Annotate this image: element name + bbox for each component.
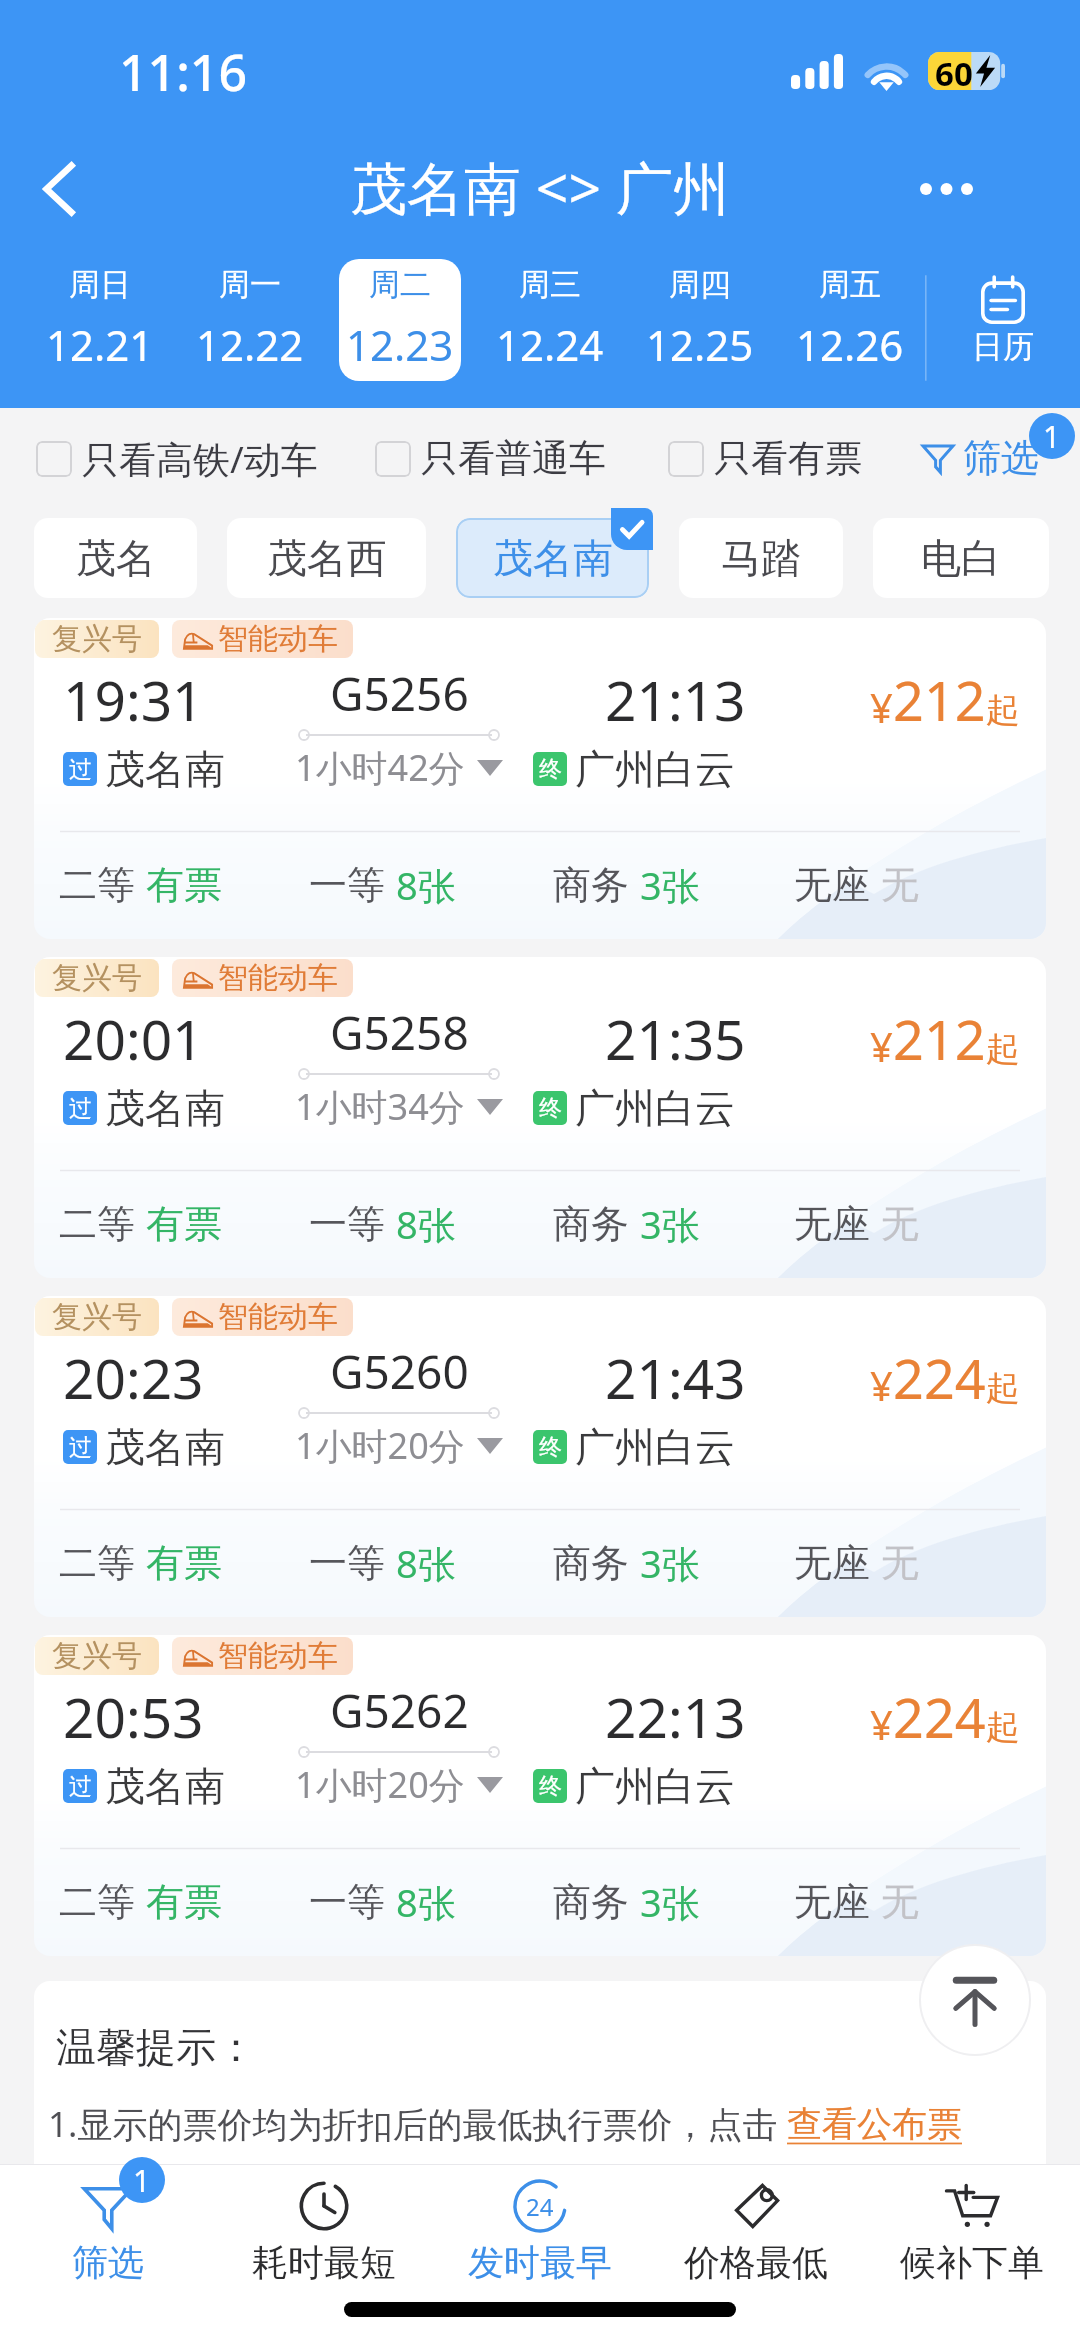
staticText: 茂名南 <> 广州 [350,148,730,226]
button[interactable]: 茂名南 [456,518,649,598]
button[interactable]: 周四 [639,259,761,381]
staticText: 二等 [59,1878,135,1926]
button[interactable]: 筛选 [921,434,1039,482]
staticText: 11:16 [119,38,247,106]
staticText: 终 [539,1094,562,1123]
staticText: 一等 [309,1539,385,1587]
staticText: 茂名 [76,533,156,583]
button[interactable]: 只看有票 [668,435,862,482]
staticText: 无 [881,861,919,909]
button[interactable]: 1 [0,2165,216,2291]
button[interactable]: 周二 [339,259,461,381]
staticText: 终 [539,1433,562,1462]
staticText: 智能动车 [218,1298,338,1336]
staticText: 周三 [519,265,581,304]
staticText: 无座 [794,1878,870,1926]
staticText: 8张 [396,1876,456,1928]
button[interactable]: 复兴号 [34,618,1046,939]
button[interactable]: 周日 [39,259,161,381]
staticText: 224 [893,1680,986,1754]
staticText: 1.显示的票价均为折扣后的最低执行票价，点击 [48,2100,787,2148]
staticText: 智能动车 [218,620,338,658]
button[interactable]: 茂名 [34,518,197,598]
button[interactable]: 只看高铁/动车 [36,433,318,484]
button[interactable]: 复兴号 [34,1635,1046,1956]
staticText: 智能动车 [218,959,338,997]
staticText: 1小时20分 [295,1760,465,1809]
button[interactable]: Scroll to top [921,1946,1029,2054]
staticText: 周日 [69,265,131,304]
staticText: 无座 [794,1539,870,1587]
button[interactable]: 价格最低 [648,2165,864,2291]
staticText: 发时最早 [468,2240,612,2285]
button[interactable]: 茂名西 [227,518,426,598]
staticText: 有票 [146,1539,222,1587]
button[interactable]: 复兴号 [34,957,1046,1278]
staticText: 无 [881,1539,919,1587]
staticText: 3张 [640,859,700,911]
button[interactable]: 耗时最短 [216,2165,432,2291]
staticText: 周二 [369,265,431,304]
button[interactable]: 日历 [925,248,1080,408]
staticText: 日历 [972,327,1034,366]
staticText: 商务 [553,1539,629,1587]
staticText: 电白 [921,533,1001,583]
button[interactable]: 查看公布票 [787,2102,962,2146]
staticText: 一等 [309,1200,385,1248]
staticText: 8张 [396,859,456,911]
staticText: 21:13 [605,662,746,737]
staticText: 无座 [794,861,870,909]
staticText: 12.23 [346,316,454,373]
staticText: 周一 [219,265,281,304]
staticText: 茂名南 [105,1761,225,1811]
staticText: 1小时20分 [295,1421,465,1470]
staticText: 只看有票 [714,435,862,482]
staticText: 广州白云 [575,744,735,794]
button[interactable]: Back [4,134,114,244]
staticText: 起 [986,689,1020,732]
staticText: 3张 [640,1537,700,1589]
staticText: 复兴号 [52,1298,142,1336]
staticText: 212 [893,663,986,737]
button[interactable]: More options [891,134,1001,244]
staticText: 12.26 [796,316,904,373]
staticText: 有票 [146,861,222,909]
button[interactable]: 电白 [873,518,1049,598]
button[interactable]: 周五 [789,259,911,381]
staticText: 起 [986,1706,1020,1749]
button[interactable]: 只看普通车 [375,435,606,482]
staticText: 无 [881,1878,919,1926]
staticText: 有票 [146,1200,222,1248]
staticText: 复兴号 [52,620,142,658]
staticText: 无 [881,1200,919,1248]
staticText: 过 [69,1094,92,1123]
staticText: 马踏 [721,533,801,583]
button[interactable]: 24 [432,2165,648,2291]
staticText: 广州白云 [575,1422,735,1472]
staticText: 耗时最短 [252,2240,396,2285]
button[interactable]: 候补下单 [864,2165,1080,2291]
staticText: 周五 [819,265,881,304]
button[interactable]: 复兴号 [34,1296,1046,1617]
staticText: 21:43 [605,1340,746,1415]
staticText: 只看普通车 [421,435,606,482]
staticText: 1 [133,2160,151,2201]
staticText: 终 [539,1772,562,1801]
staticText: 1小时42分 [295,743,465,792]
staticText: 12.22 [196,316,304,373]
staticText: 终 [539,755,562,784]
staticText: ¥ [870,1019,893,1073]
staticText: 起 [986,1367,1020,1410]
staticText: 22:13 [605,1679,746,1754]
button[interactable]: 周三 [489,259,611,381]
staticText: 212 [893,1002,986,1076]
button[interactable]: 周一 [189,259,311,381]
staticText: 茂名南 [105,1422,225,1472]
staticText: 24 [526,2190,554,2223]
staticText: 224 [893,1341,986,1415]
button[interactable]: 马踏 [679,518,843,598]
staticText: 广州白云 [575,1761,735,1811]
staticText: 12.21 [46,316,154,373]
staticText: 过 [69,1433,92,1462]
staticText: 价格最低 [684,2240,828,2285]
